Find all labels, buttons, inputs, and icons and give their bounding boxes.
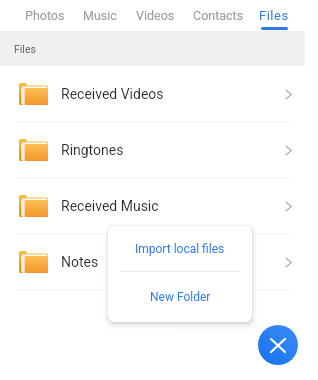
- staticText: New Folder: [150, 290, 211, 304]
- staticText: Music: [83, 8, 117, 23]
- staticText: Received Videos: [61, 86, 164, 102]
- button[interactable]: Files: [244, 0, 304, 31]
- staticText: Received Music: [61, 198, 159, 214]
- staticText: Files: [259, 8, 289, 23]
- button[interactable]: Received Videos: [0, 66, 318, 122]
- staticText: Ringtones: [61, 142, 124, 158]
- button[interactable]: Notes: [0, 234, 318, 290]
- staticText: Import local files: [135, 242, 225, 256]
- staticText: Notes: [61, 254, 99, 270]
- button[interactable]: Import local files: [108, 226, 252, 271]
- button[interactable]: Contacts: [188, 0, 248, 31]
- button[interactable]: Ringtones: [0, 122, 318, 178]
- button[interactable]: Music: [70, 0, 130, 31]
- staticText: Videos: [136, 8, 175, 23]
- staticText: Photos: [25, 8, 65, 23]
- button[interactable]: Photos: [15, 0, 75, 31]
- button[interactable]: Close: [258, 325, 298, 365]
- button[interactable]: Videos: [125, 0, 185, 31]
- button[interactable]: Received Music: [0, 178, 318, 234]
- staticText: Contacts: [193, 8, 244, 23]
- staticText: Files: [14, 43, 36, 55]
- button[interactable]: New Folder: [108, 272, 252, 322]
